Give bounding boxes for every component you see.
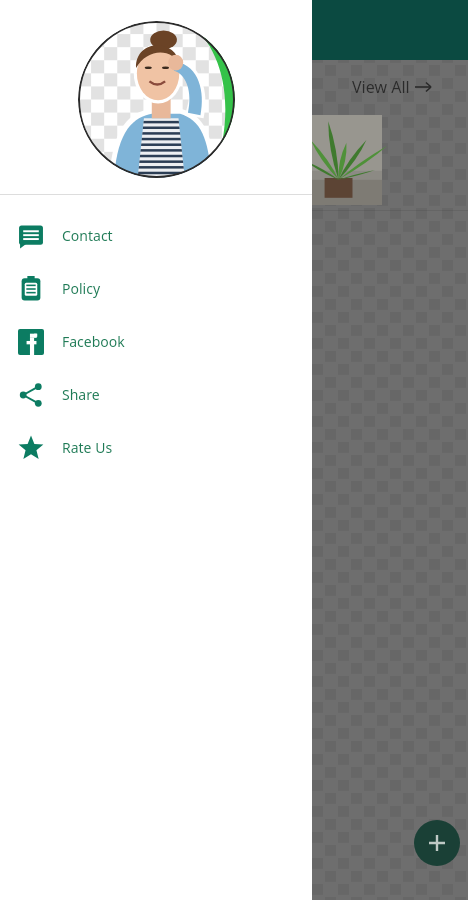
staticText: Facebook (62, 332, 125, 351)
button[interactable] (300, 115, 382, 205)
button[interactable]: Rate Us (0, 421, 312, 474)
button[interactable]: Policy (0, 262, 312, 315)
staticText: View All (352, 76, 410, 98)
button[interactable]: Contact (0, 209, 312, 262)
staticText: Policy (62, 279, 101, 298)
button[interactable]: View All (352, 76, 431, 98)
staticText: Share (62, 385, 100, 404)
button[interactable]: Share (0, 368, 312, 421)
button[interactable]: Add (414, 820, 460, 866)
staticText: Rate Us (62, 438, 113, 457)
staticText: Contact (62, 226, 113, 245)
button[interactable]: Facebook (0, 315, 312, 368)
button[interactable] (78, 21, 235, 178)
